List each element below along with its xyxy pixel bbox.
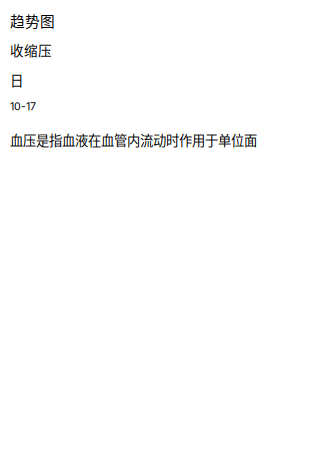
staticText: 日: [10, 70, 24, 90]
staticText: 10-17: [10, 100, 36, 113]
staticText: 收缩压: [10, 40, 52, 60]
staticText: 趋势图: [10, 10, 55, 31]
staticText: 血压是指血液在血管内流动时作用于单位面: [10, 130, 257, 149]
